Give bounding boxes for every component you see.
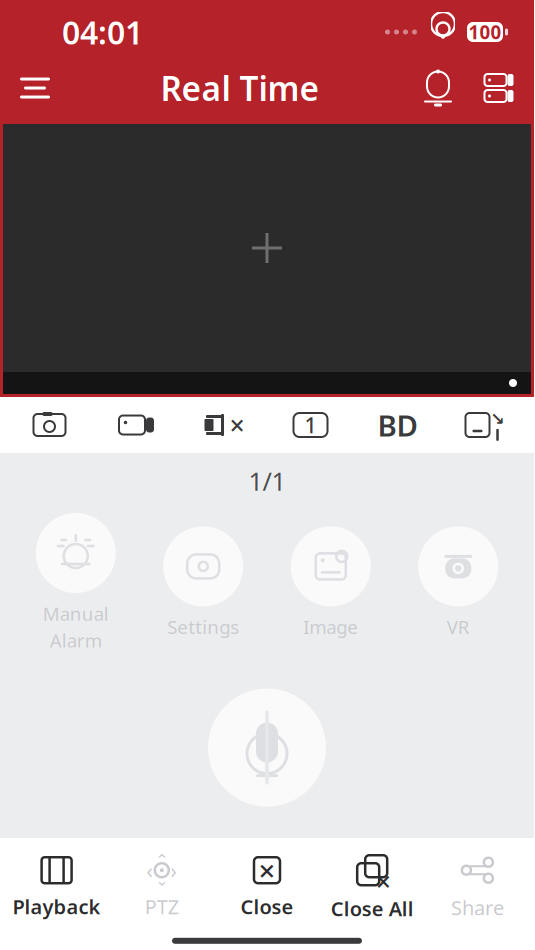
button[interactable]: Mute audio: [180, 413, 267, 437]
staticText: Share: [451, 894, 504, 921]
button[interactable]: Menu: [0, 60, 70, 116]
staticText: ×: [229, 407, 244, 443]
staticText: PTZ: [145, 893, 179, 920]
button[interactable]: ‹: [109, 848, 214, 928]
staticText: Image: [303, 614, 358, 639]
button[interactable]: Settings: [139, 526, 267, 639]
button[interactable]: Record video: [93, 414, 180, 436]
button[interactable]: ×: [320, 846, 425, 930]
button[interactable]: Two-way audio muted: [208, 689, 326, 807]
staticText: 100: [468, 20, 501, 44]
button[interactable]: Playback: [4, 848, 109, 928]
staticText: ⌃: [155, 851, 168, 869]
staticText: BD: [377, 405, 417, 444]
button[interactable]: Stream quality BD: [354, 405, 441, 444]
staticText: 1: [304, 411, 316, 439]
staticText: Real Time: [160, 66, 319, 110]
staticText: Close All: [331, 895, 414, 922]
button[interactable]: Capture photo: [6, 411, 93, 439]
button[interactable]: Image: [267, 526, 394, 639]
staticText: ×: [258, 851, 275, 890]
staticText: Manual: [43, 601, 109, 626]
staticText: 1/1: [248, 464, 285, 498]
staticText: ⌄: [155, 871, 168, 889]
staticText: ↘: [490, 409, 505, 429]
button[interactable]: Full screen: [441, 412, 528, 438]
staticText: Settings: [167, 614, 239, 639]
staticText: 04:01: [62, 11, 143, 53]
button[interactable]: ×: [214, 848, 320, 928]
staticText: ›: [170, 856, 177, 884]
button[interactable]: VR: [394, 526, 522, 639]
staticText: Alarm: [50, 628, 102, 653]
button[interactable]: Notifications: [410, 61, 466, 115]
staticText: Close: [240, 893, 293, 920]
staticText: ×: [376, 863, 391, 899]
staticText: ‹: [146, 856, 153, 884]
staticText: Playback: [13, 893, 101, 920]
staticText: VR: [447, 614, 470, 639]
button[interactable]: Share: [425, 847, 530, 929]
button[interactable]: Devices: [466, 60, 534, 116]
button[interactable]: Manual: [12, 513, 139, 653]
button[interactable]: Window count: [267, 412, 354, 438]
